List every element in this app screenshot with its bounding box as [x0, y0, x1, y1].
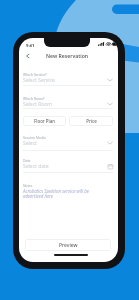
button[interactable]: Price: [69, 116, 113, 126]
staticText: Select date: [23, 163, 49, 170]
staticText: Preview: [59, 242, 78, 249]
staticText: Select Service: [23, 77, 55, 84]
staticText: Floor Plan: [34, 118, 55, 124]
staticText: Price: [86, 118, 97, 124]
staticText: Which Room?: [23, 96, 45, 101]
button[interactable]: [23, 70, 113, 86]
staticText: Select: [23, 140, 37, 147]
button[interactable]: [23, 95, 113, 110]
staticText: 9:41: [26, 43, 35, 49]
button[interactable]: [23, 134, 113, 151]
staticText: Acrobatics Speleton service will be adve…: [23, 188, 89, 200]
button[interactable]: Floor Plan: [23, 116, 66, 126]
staticText: Session Media: [23, 135, 46, 140]
button[interactable]: Back: [21, 50, 33, 62]
staticText: Notes: [23, 183, 33, 188]
staticText: Select Room: [23, 101, 53, 108]
staticText: Which Service?: [23, 72, 47, 77]
staticText: Date: [23, 158, 31, 163]
button[interactable]: [23, 157, 113, 174]
button[interactable]: Preview: [25, 239, 111, 251]
staticText: New Reservation: [46, 53, 88, 60]
